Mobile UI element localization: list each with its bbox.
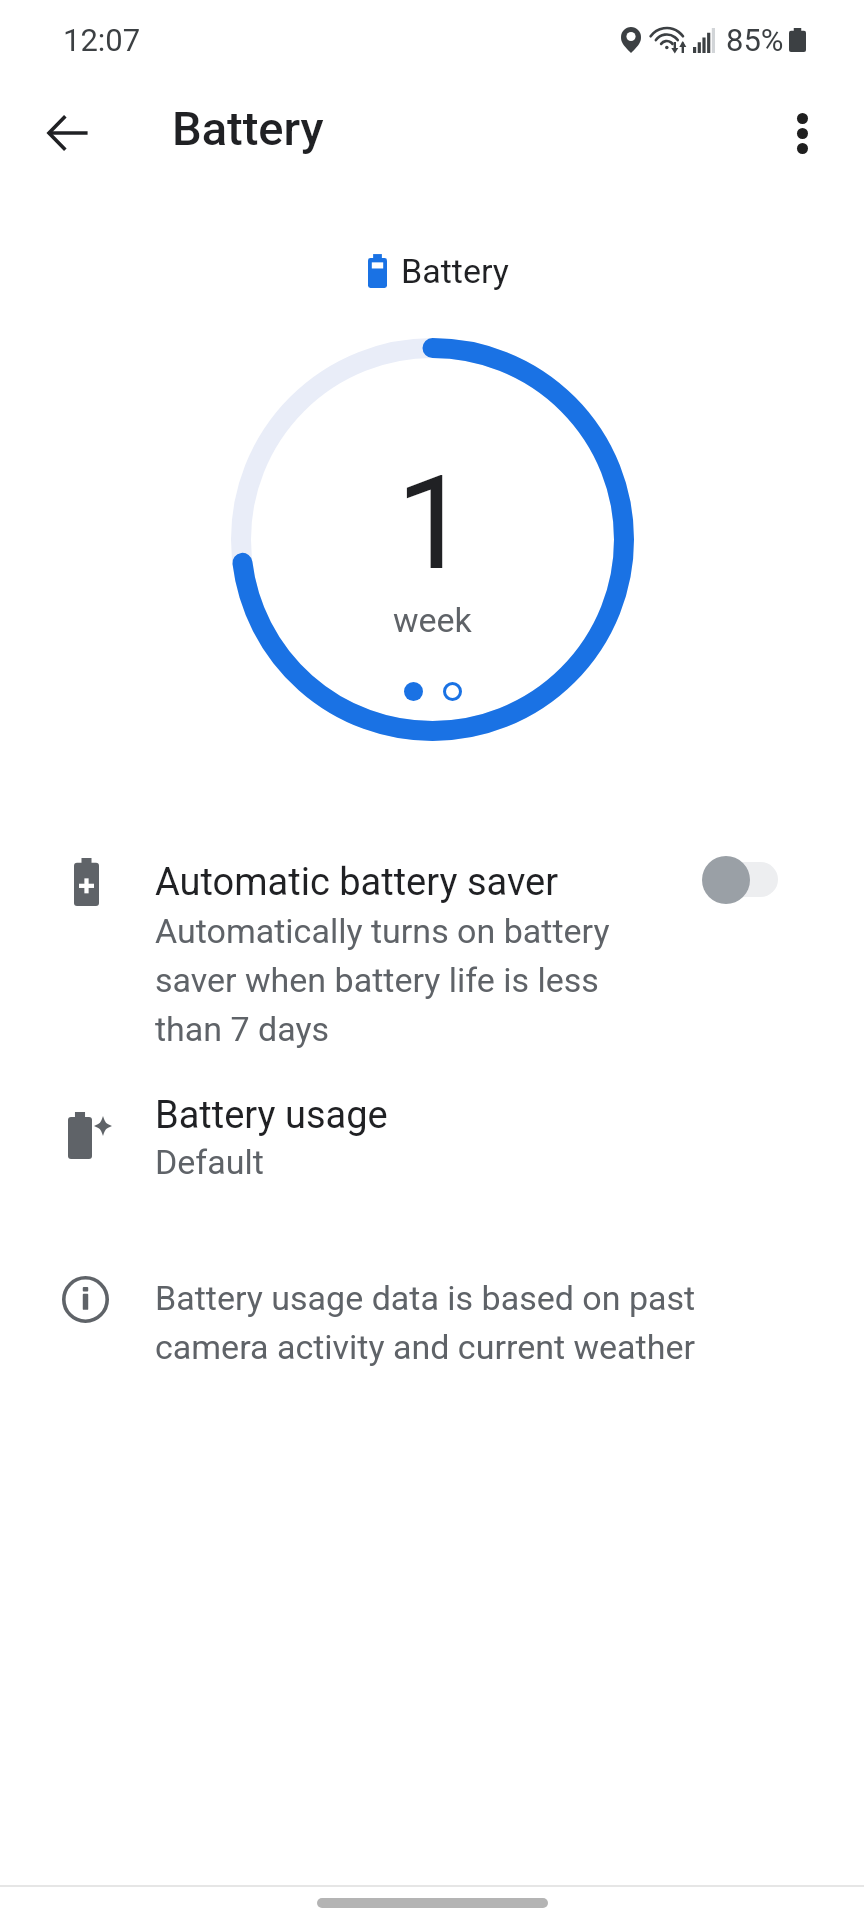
button[interactable]: Automatic battery saver	[0, 840, 864, 1050]
button[interactable]: Battery usage	[0, 1088, 864, 1198]
staticText: 85%	[726, 22, 784, 58]
staticText: Battery usage	[155, 1093, 388, 1138]
staticText: Battery	[401, 251, 509, 291]
staticText: week	[393, 600, 472, 640]
staticText: Default	[155, 1142, 264, 1182]
staticText: Battery	[172, 101, 324, 156]
button[interactable]: Automatic battery saver toggle	[690, 850, 792, 916]
staticText: Automatic battery saver	[155, 860, 559, 905]
button[interactable]: Back	[25, 93, 109, 173]
staticText: 1	[396, 447, 470, 599]
button[interactable]: More options	[760, 93, 844, 173]
staticText: Battery usage data is based on past came…	[155, 1278, 715, 1367]
staticText: 12:07	[63, 22, 141, 58]
staticText: Automatically turns on battery saver whe…	[155, 911, 625, 1049]
